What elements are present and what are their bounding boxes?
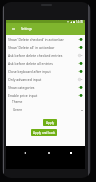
staticText: Close keyboard after input <box>8 69 77 74</box>
button[interactable]: Enable price input <box>6 91 85 99</box>
staticText: Green <box>13 108 23 112</box>
button[interactable]: Open navigation drawer <box>7 23 19 35</box>
button[interactable]: Apply <box>43 119 57 126</box>
staticText: Show categories <box>8 85 77 90</box>
button[interactable]: Apply and back <box>31 129 57 136</box>
staticText: Enable price input <box>8 93 77 98</box>
staticText: Apply <box>46 121 55 125</box>
button[interactable]: Back <box>20 148 29 157</box>
button[interactable]: Ask before delete all entries <box>6 59 85 67</box>
button[interactable]: Show categories <box>6 83 85 91</box>
staticText: Settings <box>21 27 32 31</box>
button[interactable]: Ask before delete checked entries <box>6 51 85 59</box>
button[interactable]: Recent apps <box>66 148 75 157</box>
staticText: Show 'Delete all' in actionbar <box>8 45 77 50</box>
button[interactable]: Close keyboard after input <box>6 67 85 75</box>
staticText: Ask before delete all entries <box>8 61 77 66</box>
button[interactable]: Show 'Delete checked' in actionbar <box>6 35 85 43</box>
staticText: Theme <box>12 100 23 104</box>
staticText: Ask before delete checked entries <box>8 53 77 58</box>
staticText: Only advanced input <box>8 77 77 82</box>
button[interactable]: Home <box>44 148 53 157</box>
button[interactable]: Show 'Delete all' in actionbar <box>6 43 85 51</box>
button[interactable]: Only advanced input <box>6 75 85 83</box>
button[interactable]: Green <box>6 106 85 114</box>
staticText: Show 'Delete checked' in actionbar <box>8 37 77 42</box>
staticText: Apply and back <box>33 131 56 135</box>
staticText: 14:35 <box>76 20 84 23</box>
